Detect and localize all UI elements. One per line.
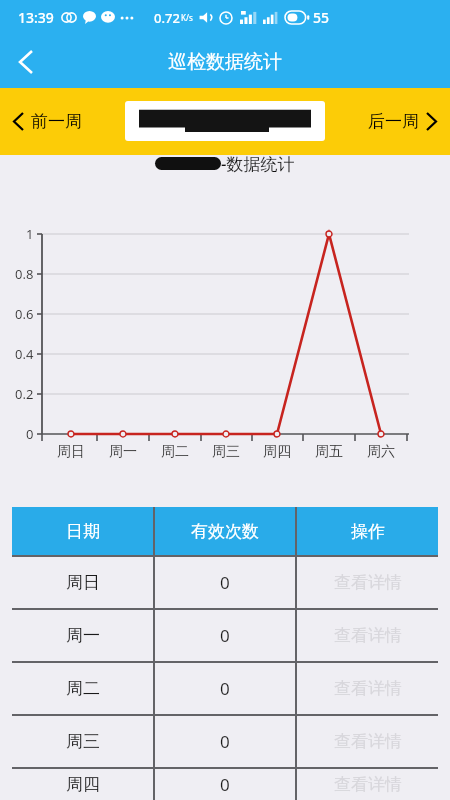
- staticText: 周三: [66, 731, 100, 752]
- staticText: 0: [220, 624, 230, 647]
- staticText: 查看详情: [334, 625, 402, 646]
- staticText: 1: [26, 225, 34, 243]
- button[interactable]: 查看详情: [297, 610, 438, 661]
- button[interactable]: 查看详情: [297, 716, 438, 767]
- staticText: 55: [313, 8, 330, 27]
- staticText: -数据统计: [221, 152, 295, 175]
- button[interactable]: 后一周: [358, 101, 450, 142]
- staticText: 周五: [315, 443, 343, 461]
- staticText: K/s: [181, 12, 193, 23]
- staticText: 13:39: [18, 8, 54, 27]
- staticText: 周三: [212, 443, 240, 461]
- staticText: 周四: [263, 443, 291, 461]
- staticText: 有效次数: [191, 521, 259, 542]
- staticText: 周一: [66, 625, 100, 646]
- staticText: 巡检数据统计: [168, 50, 282, 74]
- button[interactable]: 前一周: [0, 101, 92, 142]
- staticText: 查看详情: [334, 678, 402, 699]
- staticText: 前一周: [31, 111, 82, 132]
- staticText: 0: [220, 677, 230, 700]
- staticText: 0.6: [15, 305, 34, 323]
- button[interactable]: 查看详情: [297, 769, 438, 800]
- staticText: 0: [220, 571, 230, 594]
- staticText: 周二: [66, 678, 100, 699]
- staticText: 0: [26, 425, 34, 443]
- button[interactable]: 查看详情: [297, 557, 438, 608]
- staticText: 日期: [66, 521, 100, 542]
- button[interactable]: 查看详情: [297, 663, 438, 714]
- staticText: 周六: [367, 443, 395, 461]
- staticText: 0.72: [154, 9, 180, 27]
- button[interactable]: 操作: [297, 507, 438, 555]
- staticText: 0: [220, 730, 230, 753]
- staticText: 操作: [351, 521, 385, 542]
- staticText: 后一周: [368, 111, 419, 132]
- staticText: 周一: [109, 443, 137, 461]
- staticText: 0.4: [15, 345, 34, 363]
- button[interactable]: 日期: [12, 507, 153, 555]
- staticText: 0: [220, 773, 230, 796]
- staticText: 周二: [161, 443, 189, 461]
- button[interactable]: Back: [0, 35, 52, 88]
- button[interactable]: 有效次数: [155, 507, 295, 555]
- staticText: 查看详情: [334, 731, 402, 752]
- button[interactable]: [125, 101, 325, 141]
- staticText: 周日: [66, 572, 100, 593]
- staticText: 查看详情: [334, 572, 402, 593]
- staticText: 周日: [57, 443, 85, 461]
- staticText: 0.2: [15, 385, 34, 403]
- staticText: 0.8: [15, 265, 34, 283]
- staticText: 周四: [66, 774, 100, 795]
- staticText: 查看详情: [334, 774, 402, 795]
